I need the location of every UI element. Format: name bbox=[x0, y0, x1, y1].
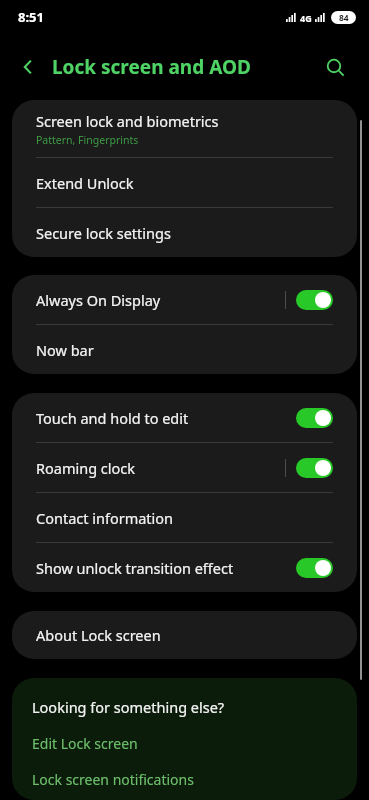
staticText: Roaming clock bbox=[36, 458, 136, 478]
button[interactable]: Screen lock and biometrics bbox=[24, 100, 345, 157]
button[interactable]: Touch and hold to edit bbox=[24, 393, 345, 442]
button[interactable]: Secure lock settings bbox=[24, 208, 345, 257]
staticText: Contact information bbox=[36, 508, 174, 528]
button[interactable]: Toggle setting bbox=[296, 408, 333, 428]
staticText: 84 bbox=[339, 12, 349, 24]
staticText: Edit Lock screen bbox=[32, 734, 138, 753]
staticText: Show unlock transition effect bbox=[36, 558, 234, 578]
button[interactable]: Toggle setting bbox=[296, 458, 333, 478]
button[interactable]: Search bbox=[319, 51, 351, 83]
button[interactable]: Show unlock transition effect bbox=[24, 543, 345, 592]
staticText: Touch and hold to edit bbox=[36, 408, 189, 428]
button[interactable]: Toggle setting bbox=[296, 558, 333, 578]
staticText: Extend Unlock bbox=[36, 173, 134, 193]
button[interactable]: Back bbox=[12, 51, 44, 83]
button[interactable]: Toggle setting bbox=[296, 290, 333, 310]
staticText: Lock screen and AOD bbox=[52, 54, 251, 80]
button[interactable]: Always On Display bbox=[24, 275, 345, 324]
staticText: Secure lock settings bbox=[36, 223, 171, 243]
staticText: Lock screen notifications bbox=[32, 770, 194, 789]
button[interactable]: Edit Lock screen bbox=[32, 734, 345, 753]
button[interactable]: Lock screen notifications bbox=[32, 770, 345, 789]
staticText: Looking for something else? bbox=[32, 697, 225, 717]
button[interactable]: About Lock screen bbox=[24, 611, 345, 659]
staticText: Screen lock and biometrics bbox=[36, 111, 219, 131]
staticText: About Lock screen bbox=[36, 625, 161, 645]
staticText: Always On Display bbox=[36, 290, 161, 310]
staticText: 4G bbox=[300, 12, 312, 24]
button[interactable]: Now bar bbox=[24, 325, 345, 374]
button[interactable]: Extend Unlock bbox=[24, 158, 345, 207]
button[interactable]: Contact information bbox=[24, 493, 345, 542]
staticText: Pattern, Fingerprints bbox=[36, 133, 139, 147]
staticText: Now bar bbox=[36, 340, 94, 360]
staticText: 8:51 bbox=[18, 8, 44, 26]
button[interactable]: Roaming clock bbox=[24, 443, 345, 492]
